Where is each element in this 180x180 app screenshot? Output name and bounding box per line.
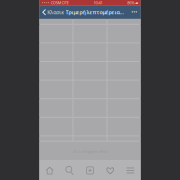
staticText: Δεν υπάρχουν άλλα (73, 148, 107, 154)
staticText: Κλασικ (47, 9, 64, 16)
button[interactable]: New post (80, 161, 100, 180)
button[interactable]: Menu (120, 161, 140, 180)
button[interactable]: More options (129, 5, 140, 19)
button[interactable]: Activity (100, 161, 120, 180)
staticText: •••• COSMOTE (42, 0, 69, 5)
staticText: Τριμερή λεπτομέρεια… (66, 9, 124, 16)
staticText: 86% ▰ (127, 0, 138, 5)
button[interactable]: Home (39, 161, 60, 180)
staticText: 10:41 (93, 0, 102, 5)
button[interactable]: Search (60, 161, 80, 180)
staticText: ••• (131, 9, 137, 16)
button[interactable]: Κλασικ (39, 5, 66, 19)
